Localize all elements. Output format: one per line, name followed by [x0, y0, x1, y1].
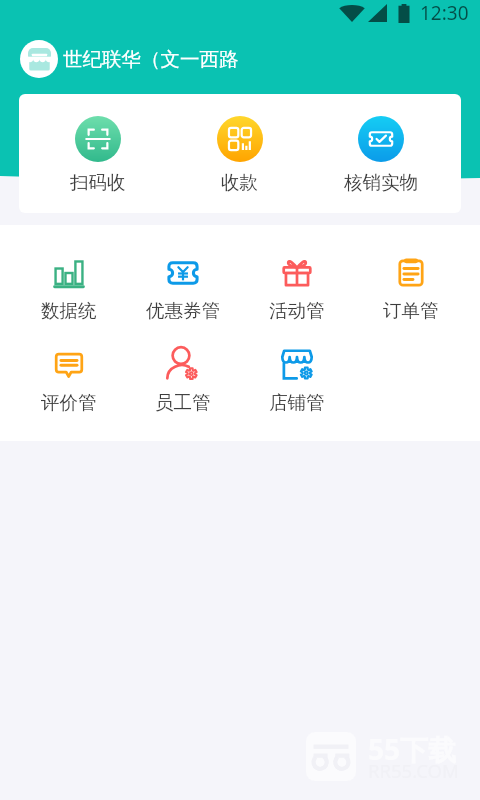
staticText: 扫码收 [70, 171, 126, 194]
button[interactable]: 活动管 [240, 257, 354, 322]
staticText: 数据统 [41, 299, 97, 322]
button[interactable]: 核销实物 [310, 94, 451, 194]
button[interactable]: 优惠券管 [126, 257, 240, 322]
staticText: 活动管 [269, 299, 325, 322]
staticText: 核销实物 [344, 171, 418, 194]
staticText: 优惠券管 [146, 299, 220, 322]
button[interactable]: 店铺管 [240, 349, 354, 414]
staticText: 评价管 [41, 391, 97, 414]
staticText: 12:30 [420, 0, 469, 26]
button[interactable]: 员工管 [126, 349, 240, 414]
button[interactable]: 评价管 [12, 349, 126, 414]
staticText: 收款 [221, 171, 258, 194]
button[interactable]: 订单管 [354, 257, 468, 322]
staticText: 店铺管 [269, 391, 325, 414]
button[interactable]: 扫码收 [27, 94, 169, 194]
button[interactable]: 数据统 [12, 257, 126, 322]
staticText: 订单管 [383, 299, 439, 322]
staticText: 员工管 [155, 391, 211, 414]
button[interactable]: 收款 [169, 94, 310, 194]
staticText: 世纪联华（文一西路 [63, 47, 239, 72]
